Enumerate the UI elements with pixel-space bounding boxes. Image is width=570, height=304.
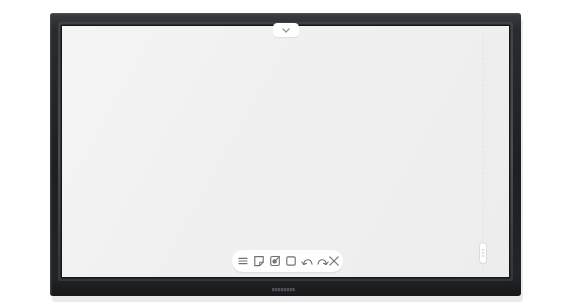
button[interactable]: Shape xyxy=(284,251,299,271)
button[interactable]: Undo xyxy=(301,251,315,271)
button[interactable]: Open panel xyxy=(273,23,299,37)
button[interactable]: Note xyxy=(252,251,267,271)
button[interactable]: Redo xyxy=(315,251,328,271)
button[interactable]: Move divider xyxy=(479,242,488,265)
button[interactable]: Brush xyxy=(268,251,283,271)
button[interactable]: Menu xyxy=(236,251,251,271)
button[interactable]: Close xyxy=(328,251,341,271)
